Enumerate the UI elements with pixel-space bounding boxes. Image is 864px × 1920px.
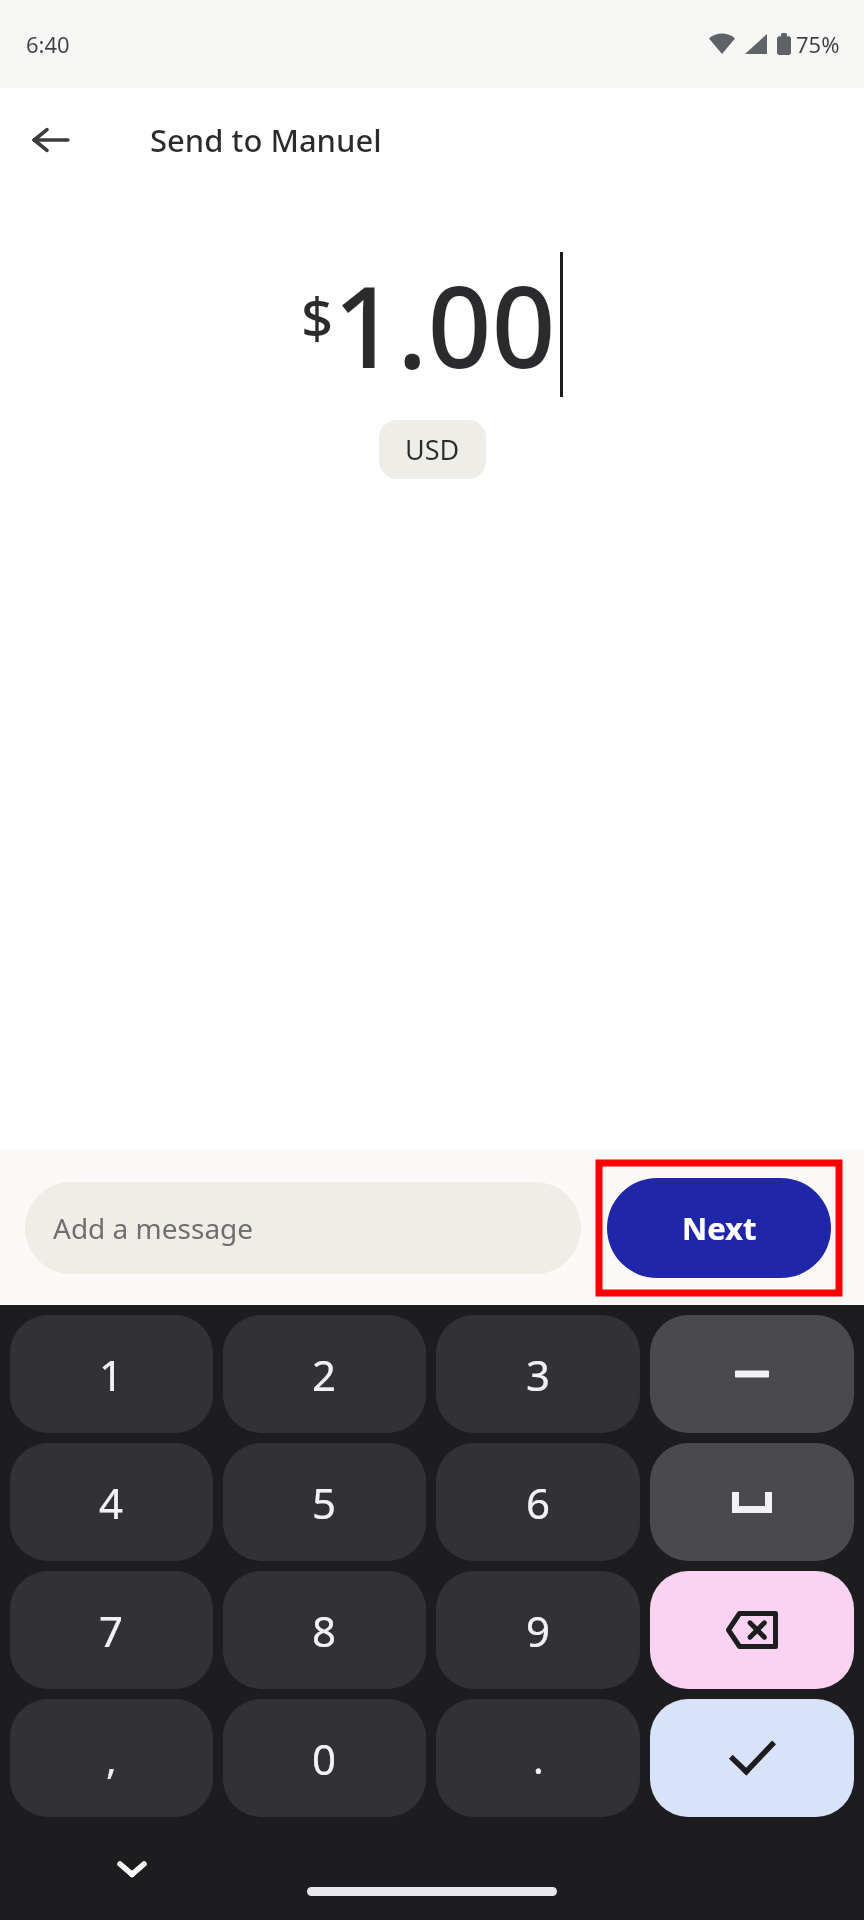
button[interactable]: Space — [650, 1443, 854, 1561]
staticText: 4 — [99, 1474, 124, 1531]
staticText: Add a message — [53, 1209, 254, 1247]
button[interactable]: Enter — [650, 1699, 854, 1817]
staticText: 6:40 — [26, 29, 70, 59]
staticText: 0 — [312, 1730, 337, 1787]
staticText: Send to Manuel — [150, 119, 382, 161]
button[interactable]: 2 — [223, 1315, 426, 1433]
staticText: . — [533, 1731, 544, 1785]
staticText: 6 — [526, 1474, 551, 1531]
staticText: 9 — [526, 1602, 551, 1659]
button[interactable]: Back — [18, 107, 84, 173]
staticText: 1 — [99, 1346, 124, 1403]
button[interactable]: 5 — [223, 1443, 426, 1561]
staticText: 75% — [796, 29, 840, 59]
staticText: 2 — [312, 1346, 337, 1403]
button[interactable]: 0 — [223, 1699, 426, 1817]
staticText: 3 — [526, 1346, 551, 1403]
button[interactable]: 8 — [223, 1571, 426, 1689]
button[interactable]: USD — [379, 420, 486, 479]
button[interactable]: Backspace — [650, 1571, 854, 1689]
button[interactable]: Add a message — [25, 1182, 581, 1274]
button[interactable]: 4 — [10, 1443, 213, 1561]
button[interactable]: , — [10, 1699, 213, 1817]
staticText: 5 — [312, 1474, 337, 1531]
button[interactable]: . — [436, 1699, 640, 1817]
button[interactable]: 6 — [436, 1443, 640, 1561]
button[interactable]: Next — [607, 1178, 831, 1278]
staticText: , — [106, 1731, 117, 1785]
button[interactable]: Hide keyboard — [105, 1842, 159, 1896]
staticText: $1.00 — [301, 248, 556, 401]
button[interactable]: 1 — [10, 1315, 213, 1433]
staticText: 8 — [312, 1602, 337, 1659]
button[interactable]: 7 — [10, 1571, 213, 1689]
button[interactable]: Minus — [650, 1315, 854, 1433]
staticText: USD — [405, 431, 460, 468]
button[interactable]: 3 — [436, 1315, 640, 1433]
button[interactable]: 9 — [436, 1571, 640, 1689]
staticText: 7 — [99, 1602, 124, 1659]
staticText: Next — [682, 1207, 757, 1249]
